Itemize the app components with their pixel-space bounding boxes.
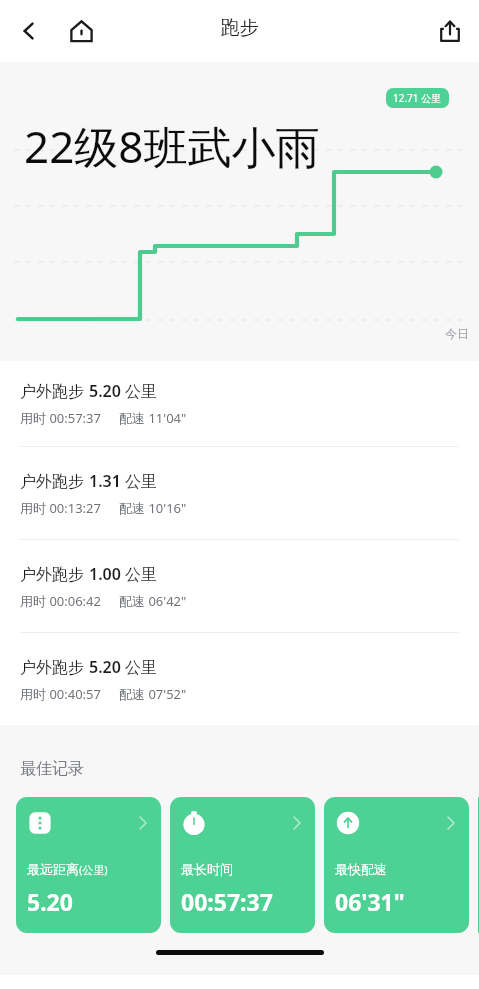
- button[interactable]: 最快配速: [324, 797, 469, 933]
- staticText: 配速 07'52": [119, 685, 187, 703]
- staticText: 跑步: [0, 16, 479, 40]
- button[interactable]: Home: [58, 8, 104, 54]
- button[interactable]: 户外跑步: [0, 633, 479, 725]
- staticText: 户外跑步: [20, 563, 89, 585]
- staticText: 5.20 公里: [89, 380, 158, 402]
- staticText: 最佳记录: [20, 759, 84, 779]
- staticText: 5.20 公里: [89, 656, 158, 678]
- staticText: 用时 00:57:37: [20, 409, 101, 427]
- button[interactable]: Share: [427, 8, 473, 54]
- staticText: 00:57:37: [181, 886, 273, 917]
- staticText: 5.20: [27, 886, 73, 917]
- button[interactable]: 户外跑步: [0, 540, 479, 632]
- button[interactable]: 户外跑步: [0, 447, 479, 539]
- staticText: 户外跑步: [20, 470, 89, 492]
- staticText: 1.00 公里: [89, 563, 158, 585]
- button[interactable]: 最长时间: [170, 797, 315, 933]
- staticText: 配速 10'16": [119, 499, 187, 517]
- staticText: 配速 11'04": [119, 409, 187, 427]
- staticText: 12.71 公里: [393, 91, 442, 105]
- staticText: 1.31 公里: [89, 470, 158, 492]
- staticText: 用时 00:13:27: [20, 499, 101, 517]
- staticText: 22级8班武小雨: [24, 116, 320, 176]
- button[interactable]: [478, 797, 479, 933]
- button[interactable]: 最远距离: [16, 797, 161, 933]
- staticText: 户外跑步: [20, 380, 89, 402]
- staticText: 今日: [445, 326, 469, 341]
- button[interactable]: Back: [6, 8, 52, 54]
- staticText: (公里): [79, 862, 108, 877]
- staticText: 户外跑步: [20, 656, 89, 678]
- staticText: 最快配速: [335, 861, 387, 877]
- staticText: 最长时间: [181, 861, 233, 877]
- staticText: 用时 00:40:57: [20, 685, 101, 703]
- button[interactable]: 户外跑步: [0, 361, 479, 446]
- staticText: 06'31": [335, 886, 405, 917]
- staticText: 用时 00:06:42: [20, 592, 101, 610]
- staticText: 最远距离: [27, 861, 79, 877]
- staticText: 配速 06'42": [119, 592, 187, 610]
